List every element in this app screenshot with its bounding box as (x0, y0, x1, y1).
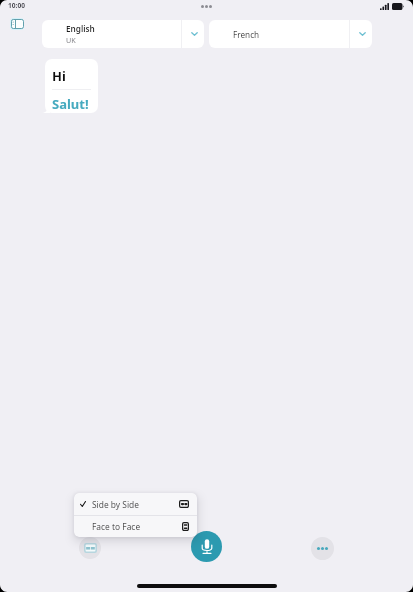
button[interactable]: Choose English language (182, 20, 204, 48)
staticText: Face to Face (92, 521, 141, 532)
button[interactable]: Side by Side (74, 493, 197, 515)
button[interactable]: Toggle sidebar (10, 18, 24, 30)
button[interactable]: More options (311, 537, 334, 560)
staticText: English (66, 23, 95, 34)
staticText: UK (66, 35, 76, 45)
button[interactable]: Microphone (191, 531, 222, 562)
staticText: 10:00 (8, 1, 25, 10)
button[interactable]: Hi (45, 59, 98, 113)
button[interactable]: French (209, 20, 372, 48)
staticText: Hi (52, 67, 66, 85)
staticText: French (233, 29, 260, 40)
button[interactable]: Side by side layout (79, 537, 101, 559)
staticText: Salut! (52, 95, 89, 113)
button[interactable]: Choose French language (350, 20, 372, 48)
staticText: Side by Side (92, 499, 139, 510)
button[interactable]: English (42, 20, 204, 48)
button[interactable]: Face to Face (74, 516, 197, 537)
